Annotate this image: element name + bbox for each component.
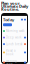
staticText: Lunch break [6,42,22,46]
staticText: Evening yoga [6,59,17,64]
staticText: Today [3,17,14,22]
staticText: Read a book [6,49,15,56]
staticText: Morning walk [6,29,24,33]
staticText: Ultimate Daily [1,3,28,9]
staticText: Routine. [1,6,19,12]
staticText: Deep work [6,36,21,39]
staticText: Plan your [1,0,20,6]
